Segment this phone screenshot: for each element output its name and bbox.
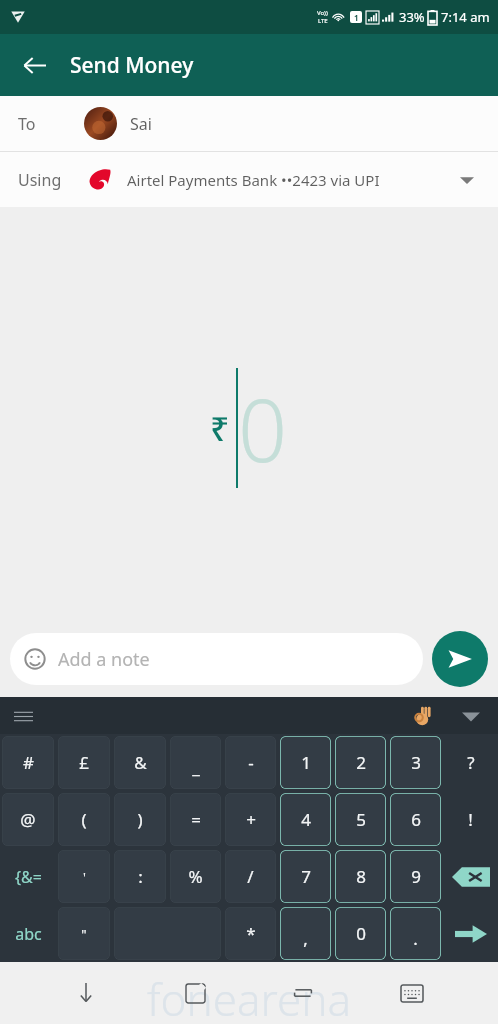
staticText: 3: [411, 751, 421, 774]
button[interactable]: Hide keyboard: [456, 701, 486, 731]
staticText: 6: [411, 808, 421, 831]
button[interactable]: Send: [432, 631, 488, 687]
staticText: 4: [301, 808, 311, 831]
staticText: -: [248, 751, 254, 774]
staticText: 7:14 am: [441, 8, 490, 26]
staticText: !: [468, 808, 473, 831]
staticText: ': [83, 868, 86, 886]
button[interactable]: 1: [280, 736, 331, 789]
button[interactable]: 7: [280, 850, 331, 903]
staticText: ₹: [210, 405, 230, 451]
button[interactable]: Emoji: [408, 701, 438, 731]
button[interactable]: 8: [335, 850, 386, 903]
button[interactable]: #: [2, 736, 54, 789]
staticText: &: [134, 751, 147, 774]
staticText: fonearena: [147, 969, 352, 1024]
button[interactable]: £: [58, 736, 110, 789]
staticText: 8: [356, 865, 366, 888]
button[interactable]: Add a note: [10, 633, 423, 685]
button[interactable]: 3: [390, 736, 441, 789]
staticText: #: [23, 751, 34, 774]
button[interactable]: Recents: [280, 970, 326, 1016]
staticText: ?: [467, 751, 475, 774]
button[interactable]: Switch keyboard: [389, 970, 435, 1016]
staticText: ): [137, 808, 143, 831]
button[interactable]: :: [114, 850, 166, 903]
staticText: =: [191, 808, 201, 831]
button[interactable]: To: [0, 96, 498, 151]
button[interactable]: ): [114, 793, 166, 846]
button[interactable]: Home: [172, 970, 218, 1016]
button[interactable]: 6: [390, 793, 441, 846]
button[interactable]: Back: [12, 43, 56, 87]
button[interactable]: abc: [2, 907, 54, 960]
button[interactable]: Using: [0, 152, 498, 207]
button[interactable]: &: [114, 736, 166, 789]
staticText: To: [18, 113, 36, 135]
staticText: 7: [301, 865, 311, 888]
button[interactable]: %: [170, 850, 221, 903]
staticText: 2: [356, 751, 366, 774]
staticText: /: [247, 865, 254, 888]
staticText: Add a note: [58, 647, 150, 672]
button[interactable]: @: [2, 793, 54, 846]
button[interactable]: +: [225, 793, 276, 846]
button[interactable]: Back: [63, 970, 109, 1016]
button[interactable]: [445, 907, 496, 960]
button[interactable]: 9: [390, 850, 441, 903]
staticText: Using: [18, 169, 62, 191]
staticText: _: [192, 756, 200, 779]
staticText: *: [246, 922, 256, 945]
staticText: .: [413, 927, 418, 950]
button[interactable]: ?: [445, 736, 496, 789]
button[interactable]: 4: [280, 793, 331, 846]
staticText: ,: [303, 927, 308, 950]
staticText: :: [138, 865, 143, 888]
button[interactable]: 0: [335, 907, 386, 960]
button[interactable]: 5: [335, 793, 386, 846]
staticText: @: [20, 808, 36, 831]
staticText: 5: [356, 808, 366, 831]
staticText: +: [246, 808, 256, 831]
button[interactable]: .: [390, 907, 441, 960]
staticText: Vo)): [317, 9, 328, 17]
staticText: abc: [15, 923, 42, 945]
staticText: 0: [356, 922, 366, 945]
staticText: Send Money: [70, 51, 194, 80]
staticText: {&=: [15, 866, 42, 888]
staticText: LTE: [318, 17, 328, 25]
staticText: 1: [354, 12, 359, 23]
staticText: 33%: [399, 8, 425, 26]
button[interactable]: [445, 850, 496, 903]
button[interactable]: =: [170, 793, 221, 846]
button[interactable]: ,: [280, 907, 331, 960]
button[interactable]: *: [225, 907, 276, 960]
staticText: 1: [301, 751, 311, 774]
staticText: %: [188, 865, 203, 888]
staticText: Airtel Payments Bank ••2423 via UPI: [127, 170, 380, 190]
button[interactable]: ': [58, 850, 110, 903]
staticText: ": [81, 925, 87, 943]
button[interactable]: ": [58, 907, 110, 960]
staticText: 0: [238, 370, 288, 487]
button[interactable]: Keyboard menu: [8, 701, 38, 731]
button[interactable]: !: [445, 793, 496, 846]
button[interactable]: {&=: [2, 850, 54, 903]
button[interactable]: _: [170, 736, 221, 789]
button[interactable]: /: [225, 850, 276, 903]
staticText: 9: [411, 865, 421, 888]
button[interactable]: -: [225, 736, 276, 789]
staticText: (: [81, 808, 87, 831]
staticText: £: [79, 751, 89, 774]
button[interactable]: (: [58, 793, 110, 846]
staticText: Sai: [130, 113, 152, 135]
button[interactable]: 2: [335, 736, 386, 789]
